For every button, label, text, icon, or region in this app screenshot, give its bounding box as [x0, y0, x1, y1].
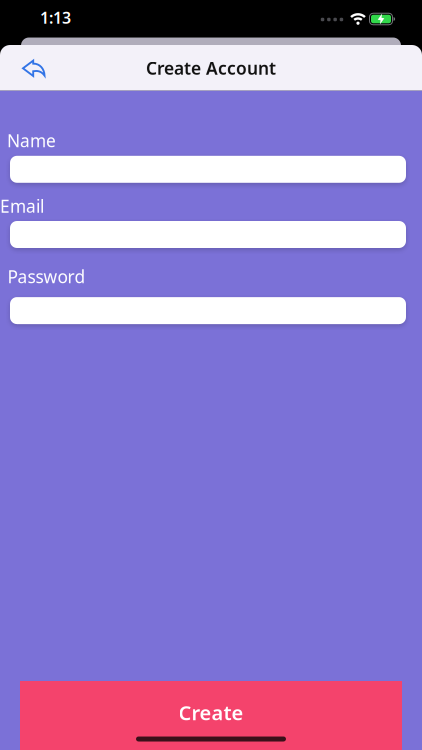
staticText: Name: [7, 129, 56, 152]
staticText: Email: [0, 194, 44, 217]
staticText: Password: [7, 265, 85, 288]
button[interactable]: Email text field: [10, 221, 406, 248]
button[interactable]: Back: [0, 45, 54, 91]
button[interactable]: Create: [20, 681, 402, 750]
staticText: 1:13: [40, 7, 71, 28]
button[interactable]: Password text field: [10, 297, 406, 324]
staticText: Create Account: [146, 56, 276, 79]
button[interactable]: Name text field: [10, 156, 406, 183]
staticText: Create: [178, 699, 243, 726]
